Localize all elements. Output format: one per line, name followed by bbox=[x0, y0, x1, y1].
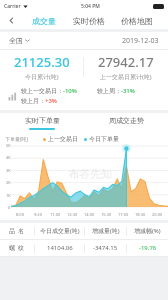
staticText: 价格地图 bbox=[121, 16, 153, 26]
staticText: 增减幅(%) bbox=[134, 227, 161, 235]
staticText: 20:00 bbox=[152, 212, 163, 217]
staticText: +3% bbox=[45, 97, 57, 105]
staticText: 2K bbox=[6, 180, 11, 185]
button[interactable]: 成交量 bbox=[22, 12, 66, 29]
staticText: 螺 纹 bbox=[9, 244, 25, 252]
staticText: 较上月： bbox=[21, 97, 45, 105]
staticText: 周成交走势 bbox=[109, 116, 144, 125]
staticText: 21125.30 bbox=[14, 53, 70, 71]
button[interactable]: 实时下单量 bbox=[0, 113, 84, 133]
staticText: 17:00 bbox=[118, 212, 129, 217]
staticText: 14104.06 bbox=[47, 244, 73, 252]
staticText: 较上周： bbox=[97, 87, 121, 95]
staticText: Carrier bbox=[4, 3, 21, 10]
staticText: 今日成交量(吨) bbox=[40, 227, 80, 235]
staticText: 今日下单量 bbox=[89, 135, 119, 143]
button[interactable]: 周成交走势 bbox=[84, 113, 168, 133]
staticText: -31% bbox=[121, 87, 135, 95]
button[interactable]: 价格地图 bbox=[112, 12, 162, 29]
staticText: -3474.15 bbox=[93, 244, 118, 252]
button[interactable]: 全国 bbox=[9, 36, 30, 45]
staticText: 上一交易日 bbox=[48, 135, 78, 143]
staticText: 14:00 bbox=[84, 212, 95, 217]
staticText: 2019-12-03 bbox=[122, 36, 159, 46]
staticText: 8:00 bbox=[16, 212, 24, 217]
staticText: 今日累计(吨) bbox=[25, 73, 59, 81]
staticText: 9:30 bbox=[34, 212, 42, 217]
button[interactable]: 螺 纹 bbox=[0, 240, 168, 256]
staticText: 4K bbox=[6, 155, 11, 160]
staticText: -10% bbox=[63, 87, 77, 95]
staticText: -19.76 bbox=[139, 244, 157, 252]
staticText: 5K bbox=[6, 143, 11, 148]
staticText: 布谷先知 bbox=[68, 167, 112, 181]
staticText: 11:00 bbox=[50, 212, 61, 217]
staticText: 18:30 bbox=[135, 212, 146, 217]
staticText: 12:30 bbox=[67, 212, 78, 217]
button[interactable]: Back bbox=[0, 12, 22, 29]
staticText: 增减量(吨) bbox=[92, 227, 120, 235]
staticText: 下单量(吨) bbox=[5, 136, 29, 143]
staticText: 5:04 PM bbox=[81, 3, 100, 10]
staticText: 上一交易日累计(吨) bbox=[100, 73, 152, 81]
button[interactable]: 实时价格 bbox=[66, 12, 112, 29]
staticText: 3K bbox=[6, 168, 11, 173]
staticText: 实时价格 bbox=[73, 16, 105, 26]
staticText: 27942.17 bbox=[98, 53, 154, 71]
staticText: 全国 bbox=[9, 36, 23, 45]
staticText: 成交量 bbox=[32, 16, 56, 26]
staticText: 15:30 bbox=[101, 212, 112, 217]
staticText: 1K bbox=[6, 193, 11, 198]
staticText: 实时下单量 bbox=[25, 116, 60, 125]
staticText: 品 名 bbox=[9, 227, 25, 235]
staticText: 0 bbox=[8, 205, 11, 210]
staticText: 较上一交易日： bbox=[21, 87, 63, 95]
